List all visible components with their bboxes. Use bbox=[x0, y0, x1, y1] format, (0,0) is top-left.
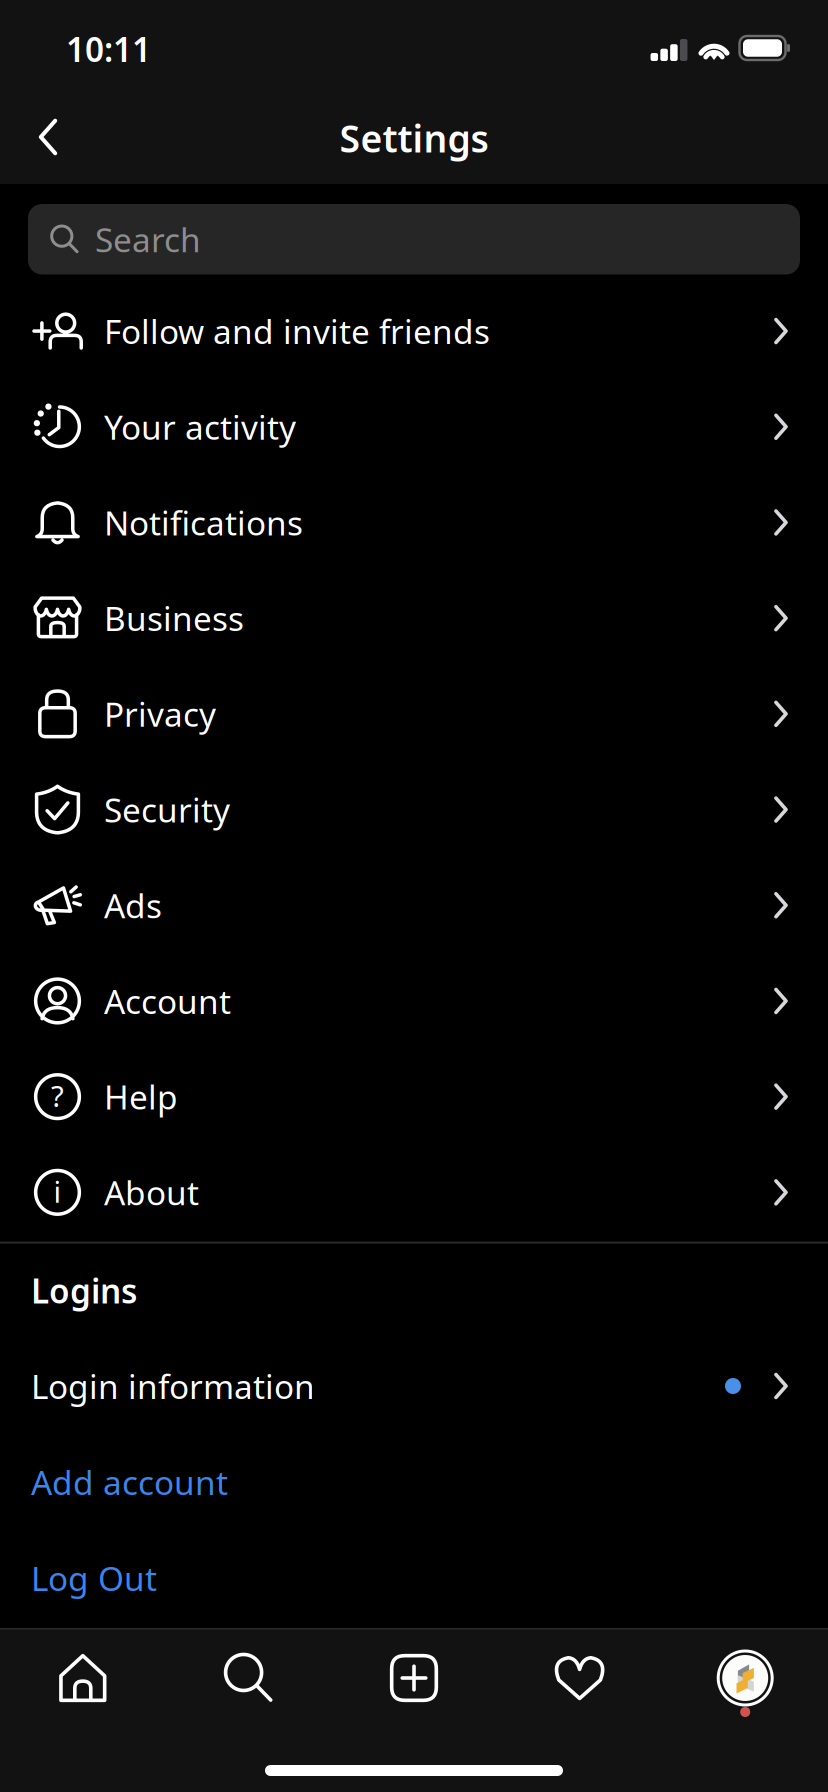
button[interactable]: New post bbox=[331, 1638, 497, 1718]
staticText: i bbox=[53, 1172, 61, 1211]
staticText: Your activity bbox=[104, 405, 296, 449]
staticText: Business bbox=[104, 596, 244, 640]
staticText: Search bbox=[95, 217, 201, 261]
staticText: Login information bbox=[31, 1364, 315, 1408]
staticText: Notifications bbox=[104, 500, 303, 545]
staticText: Security bbox=[104, 787, 230, 832]
staticText: 10:11 bbox=[66, 27, 151, 71]
button[interactable]: ? bbox=[0, 1049, 828, 1144]
button[interactable]: Notifications bbox=[0, 475, 828, 570]
button[interactable]: Login information bbox=[0, 1338, 828, 1433]
staticText: Account bbox=[104, 979, 231, 1023]
staticText: Logins bbox=[31, 1268, 137, 1313]
button[interactable]: Add account bbox=[0, 1434, 828, 1529]
button[interactable]: Your activity bbox=[0, 379, 828, 475]
button[interactable]: Business bbox=[0, 570, 828, 666]
button[interactable]: Privacy bbox=[0, 666, 828, 762]
button[interactable]: i bbox=[0, 1144, 828, 1240]
button[interactable]: Back bbox=[6, 95, 90, 179]
staticText: Privacy bbox=[104, 692, 216, 736]
button[interactable]: Search bbox=[166, 1638, 331, 1718]
button[interactable]: Security bbox=[0, 762, 828, 857]
staticText: Ads bbox=[104, 883, 162, 927]
button[interactable]: Home bbox=[0, 1638, 166, 1718]
staticText: Add account bbox=[31, 1460, 228, 1504]
staticText: Settings bbox=[339, 113, 488, 163]
button[interactable]: Profile bbox=[662, 1638, 828, 1718]
staticText: ? bbox=[51, 1076, 64, 1115]
staticText: Log Out bbox=[31, 1556, 157, 1600]
button[interactable]: Search bbox=[28, 204, 800, 274]
button[interactable]: Follow and invite friends bbox=[0, 283, 828, 379]
button[interactable]: Ads bbox=[0, 857, 828, 953]
staticText: Follow and invite friends bbox=[104, 309, 490, 353]
button[interactable]: Log Out bbox=[0, 1530, 828, 1625]
button[interactable]: Account bbox=[0, 953, 828, 1049]
button[interactable]: Activity bbox=[497, 1638, 662, 1718]
staticText: Help bbox=[104, 1074, 178, 1119]
staticText: About bbox=[104, 1170, 199, 1214]
